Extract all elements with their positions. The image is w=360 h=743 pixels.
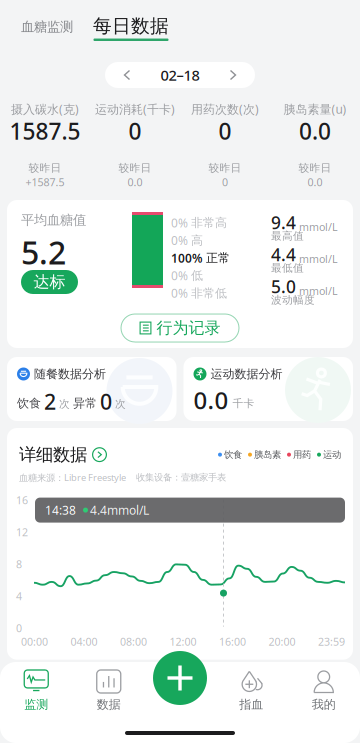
button[interactable]: Add record [153,651,207,705]
staticText: 4 [16,589,22,603]
staticText: 详细数据 [19,444,87,465]
staticText: 00:00 [21,635,48,649]
staticText: 非常高 [191,215,227,230]
staticText: 2 [44,387,56,415]
button[interactable]: 运动数据分析 [183,357,353,421]
staticText: mmol/L [299,284,338,298]
button[interactable]: 指血 [215,670,287,711]
staticText: 血糖监测 [21,19,73,35]
staticText: 饮食 [17,396,41,411]
staticText: 数据 [97,697,121,712]
staticText: 最低值 [271,261,304,274]
staticText: 达标 [33,272,65,292]
staticText: 正常 [206,251,230,265]
staticText: 千卡 [232,397,254,410]
button[interactable]: 监测 [0,670,72,711]
staticText: 较昨日 [298,161,331,174]
staticText: 监测 [24,697,48,712]
staticText: 0% [171,215,188,231]
staticText: 20:00 [268,635,295,649]
staticText: mmol/L [299,220,338,234]
staticText: 4.4mmol/L [90,502,149,518]
staticText: 12:00 [169,635,196,649]
staticText: 0.0 [299,116,331,146]
staticText: 较昨日 [28,161,61,174]
staticText: +1587.5 [25,175,64,189]
staticText: 5.2 [21,231,66,273]
staticText: 用药次数(次) [191,101,259,117]
staticText: 0% [171,268,188,283]
staticText: 次 [115,397,126,410]
button[interactable]: 我的 [287,670,360,711]
staticText: 低 [191,268,203,283]
staticText: 我的 [312,697,336,712]
staticText: 运动数据分析 [210,367,282,381]
staticText: 0 [218,116,231,146]
staticText: 0 [128,116,141,146]
staticText: 随餐数据分析 [34,367,106,381]
staticText: 平均血糖值 [21,212,86,228]
button[interactable]: 随餐数据分析 [7,357,176,421]
button[interactable]: 每日数据 [93,15,169,41]
staticText: 胰岛素 [254,449,281,460]
button[interactable]: 达标 [21,270,78,294]
staticText: 0% [171,232,188,248]
button[interactable]: 行为记录 [121,314,239,342]
staticText: 饮食 [224,449,242,460]
staticText: 运动消耗(千卡) [95,101,175,117]
staticText: 1587.5 [9,116,80,146]
staticText: 16:00 [219,635,246,649]
button[interactable]: 数据 [72,670,145,711]
staticText: 0 [222,175,228,189]
staticText: 次 [59,397,70,410]
button[interactable]: 详细数据 [19,444,107,465]
staticText: mmol/L [299,252,338,266]
staticText: 用药 [293,449,311,460]
staticText: 0.0 [127,175,142,189]
staticText: 14:38 [45,502,76,518]
staticText: 5.0 [271,275,296,298]
staticText: 16 [16,493,28,507]
button[interactable]: Next day [211,62,255,88]
staticText: 0% [171,285,188,301]
staticText: 运动 [323,449,341,460]
staticText: 较昨日 [208,161,241,174]
staticText: 12 [16,525,28,539]
staticText: 08:00 [120,635,147,649]
staticText: 02–18 [160,65,199,85]
staticText: 0 [100,387,112,415]
staticText: 23:59 [318,635,345,649]
staticText: 指血 [239,697,263,712]
staticText: 高 [191,233,203,248]
button[interactable]: Previous day [105,62,149,88]
staticText: 9.4 [271,211,296,234]
staticText: 0 [16,621,22,635]
staticText: 04:00 [70,635,97,649]
staticText: 波动幅度 [271,293,315,306]
staticText: 100% [171,250,203,266]
staticText: 0.0 [307,175,322,189]
staticText: 非常低 [191,286,227,300]
staticText: 摄入碳水(克) [11,101,79,117]
staticText: 行为记录 [156,318,220,338]
staticText: 0.0 [193,384,228,416]
staticText: 4.4 [271,243,296,266]
staticText: 血糖来源：Libre Freestyle [19,471,126,484]
staticText: 每日数据 [93,15,169,37]
staticText: 8 [16,557,22,571]
staticText: 较昨日 [118,161,151,174]
staticText: 收集设备：壹糖家手表 [136,472,226,483]
staticText: 异常 [73,396,97,411]
staticText: 最高值 [271,229,304,242]
button[interactable]: 血糖监测 [21,19,73,41]
staticText: 胰岛素量(u) [283,101,346,117]
